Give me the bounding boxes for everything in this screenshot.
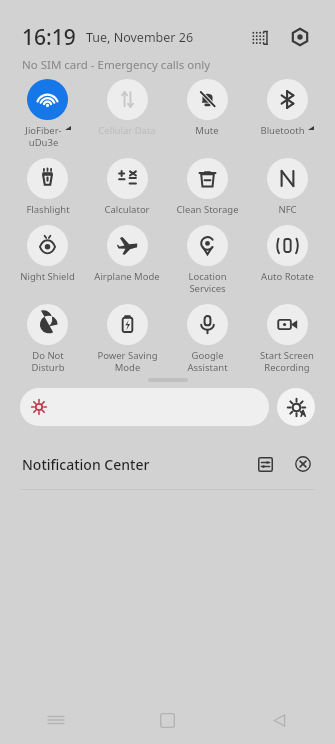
button[interactable]: NFC — [247, 158, 327, 216]
staticText: Tue, November 26 — [86, 29, 194, 46]
staticText: Night Shield — [20, 270, 75, 283]
button[interactable]: Do Not Disturb — [8, 304, 87, 374]
staticText: Flashlight — [26, 203, 70, 216]
button[interactable]: Recent apps — [0, 696, 111, 744]
button[interactable]: Airplane Mode — [87, 225, 167, 283]
staticText: Google Assistant — [187, 349, 228, 374]
staticText: Location Services — [188, 270, 227, 295]
button[interactable]: Power Saving Mode — [87, 304, 167, 374]
button[interactable]: Auto Rotate — [247, 225, 327, 283]
button[interactable]: Brightness — [20, 388, 269, 426]
button[interactable]: Clear all notifications — [289, 450, 317, 478]
button[interactable]: JioFiber- uDu3e — [8, 79, 87, 149]
button[interactable]: Mute — [167, 79, 247, 137]
button[interactable]: Settings — [285, 22, 315, 52]
button[interactable]: Clean Storage — [167, 158, 247, 216]
staticText: Start Screen Recording — [260, 349, 314, 374]
button[interactable]: Bluetooth — [247, 79, 327, 137]
staticText: JioFiber- uDu3e — [25, 124, 62, 149]
button[interactable]: Notification settings — [251, 450, 279, 478]
staticText: Do Not Disturb — [31, 349, 65, 374]
button[interactable]: Home — [111, 696, 223, 744]
button[interactable]: Start Screen Recording — [247, 304, 327, 374]
button[interactable]: Cellular Data — [87, 79, 167, 137]
button[interactable]: Edit quick settings — [245, 22, 275, 52]
staticText: Bluetooth — [260, 124, 305, 137]
button[interactable]: Night Shield — [8, 225, 87, 283]
button[interactable]: Flashlight — [8, 158, 87, 216]
button[interactable]: Auto brightness — [277, 388, 315, 426]
staticText: Notification Center — [22, 455, 150, 474]
staticText: Calculator — [104, 203, 150, 216]
button[interactable]: Google Assistant — [167, 304, 247, 374]
staticText: Cellular Data — [98, 124, 156, 137]
staticText: No SIM card - Emergency calls only — [22, 57, 211, 73]
staticText: Clean Storage — [176, 203, 239, 216]
staticText: NFC — [278, 203, 297, 216]
staticText: Power Saving Mode — [97, 349, 158, 374]
button[interactable]: Location Services — [167, 225, 247, 295]
staticText: Mute — [195, 124, 219, 137]
button[interactable]: Calculator — [87, 158, 167, 216]
staticText: 16:19 — [22, 23, 76, 52]
staticText: Auto Rotate — [261, 270, 314, 283]
staticText: Airplane Mode — [94, 270, 160, 283]
